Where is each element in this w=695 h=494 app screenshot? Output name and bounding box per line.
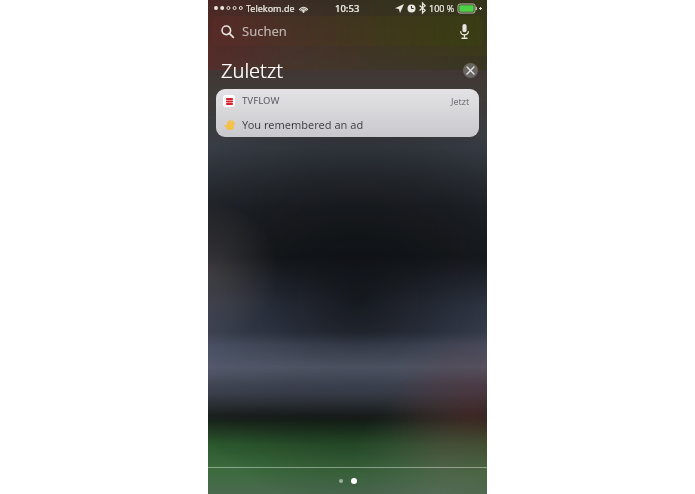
staticText: You remembered an ad <box>242 117 364 132</box>
button[interactable]: TVFLOW <box>216 89 479 137</box>
staticText: Jetzt <box>451 95 470 107</box>
staticText: Telekom.de <box>246 2 295 14</box>
staticText: Suchen <box>242 22 287 40</box>
staticText: 100 % <box>429 2 455 14</box>
staticText: 10:53 <box>335 2 360 15</box>
staticText: TVFLOW <box>242 94 280 107</box>
button[interactable]: Suchen <box>212 16 483 46</box>
button[interactable]: Sprachsuche <box>454 21 474 41</box>
button[interactable]: Schließen <box>463 63 478 78</box>
staticText: Zuletzt <box>221 57 283 84</box>
